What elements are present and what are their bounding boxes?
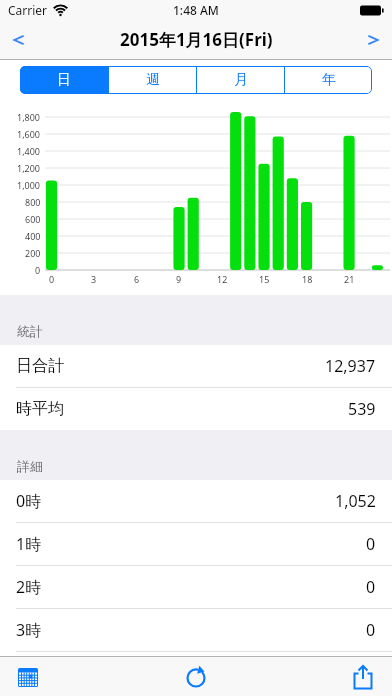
button[interactable]: 週: [109, 66, 196, 94]
staticText: 6: [134, 273, 140, 285]
staticText: 21: [344, 273, 355, 285]
staticText: 詳細: [17, 458, 43, 474]
staticText: 0: [49, 273, 55, 285]
staticText: 1,200: [17, 162, 41, 174]
staticText: 1:48 AM: [173, 2, 219, 18]
staticText: 18: [302, 273, 313, 285]
staticText: 1,400: [17, 145, 41, 157]
staticText: 月: [234, 71, 248, 89]
button[interactable]: 年: [285, 66, 372, 94]
button[interactable]: 2時: [0, 566, 392, 608]
staticText: 年: [322, 71, 336, 89]
staticText: 1,600: [17, 128, 41, 140]
staticText: 9: [176, 273, 182, 285]
staticText: 2015年1月16日(Fri): [120, 28, 273, 51]
button[interactable]: 日合計: [0, 345, 392, 387]
staticText: 1,052: [335, 490, 376, 512]
staticText: 1,000: [17, 179, 41, 191]
button[interactable]: [351, 665, 375, 689]
button[interactable]: [360, 27, 386, 53]
staticText: 0: [366, 576, 376, 598]
staticText: 0: [366, 619, 376, 641]
button[interactable]: 月: [197, 66, 284, 94]
staticText: 600: [25, 213, 41, 225]
staticText: 15: [259, 273, 270, 285]
staticText: 1時: [16, 533, 42, 555]
staticText: 3時: [16, 619, 42, 641]
staticText: Carrier: [8, 2, 48, 18]
staticText: 時平均: [16, 399, 64, 419]
staticText: 400: [25, 230, 41, 242]
staticText: 統計: [17, 323, 43, 339]
staticText: 800: [25, 196, 41, 208]
staticText: 日: [57, 71, 71, 89]
staticText: 0時: [16, 490, 42, 512]
staticText: 2時: [16, 576, 42, 598]
button[interactable]: 0時: [0, 480, 392, 522]
staticText: 0: [35, 264, 41, 276]
staticText: 3: [91, 273, 97, 285]
staticText: 200: [25, 247, 41, 259]
button[interactable]: 3時: [0, 609, 392, 651]
button[interactable]: 時平均: [0, 388, 392, 430]
staticText: 1,800: [17, 111, 41, 123]
staticText: 12: [217, 273, 228, 285]
staticText: 日合計: [16, 356, 64, 376]
staticText: 週: [146, 71, 160, 89]
staticText: 0: [366, 533, 376, 555]
staticText: 12,937: [325, 355, 376, 377]
button[interactable]: [184, 665, 208, 689]
button[interactable]: [6, 27, 32, 53]
staticText: 539: [348, 398, 376, 420]
button[interactable]: [17, 665, 41, 689]
button[interactable]: 1時: [0, 523, 392, 565]
button[interactable]: 日: [20, 66, 108, 94]
